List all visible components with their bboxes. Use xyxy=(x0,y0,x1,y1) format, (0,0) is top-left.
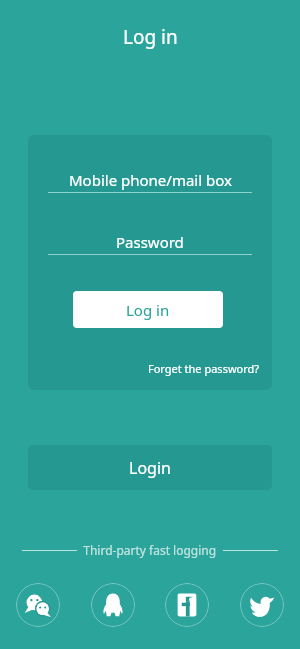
button[interactable]: Mobile phone/mail box xyxy=(28,163,272,197)
staticText: Log in xyxy=(126,300,170,320)
staticText: Third-party fast logging xyxy=(77,542,223,558)
button[interactable]: Password xyxy=(28,225,272,259)
staticText: Forget the password? xyxy=(148,361,260,376)
button[interactable]: WeChat login xyxy=(16,583,60,627)
button[interactable]: Facebook login xyxy=(165,583,209,627)
button[interactable]: Forget the password? xyxy=(146,359,262,378)
button[interactable]: Log in xyxy=(73,291,223,328)
button[interactable]: Twitter login xyxy=(240,583,284,627)
button[interactable]: QQ login xyxy=(91,583,135,627)
staticText: Mobile phone/mail box xyxy=(69,170,232,190)
staticText: Login xyxy=(129,457,171,479)
staticText: Log in xyxy=(123,24,178,50)
button[interactable]: Login xyxy=(28,445,272,490)
staticText: Password xyxy=(116,232,184,252)
